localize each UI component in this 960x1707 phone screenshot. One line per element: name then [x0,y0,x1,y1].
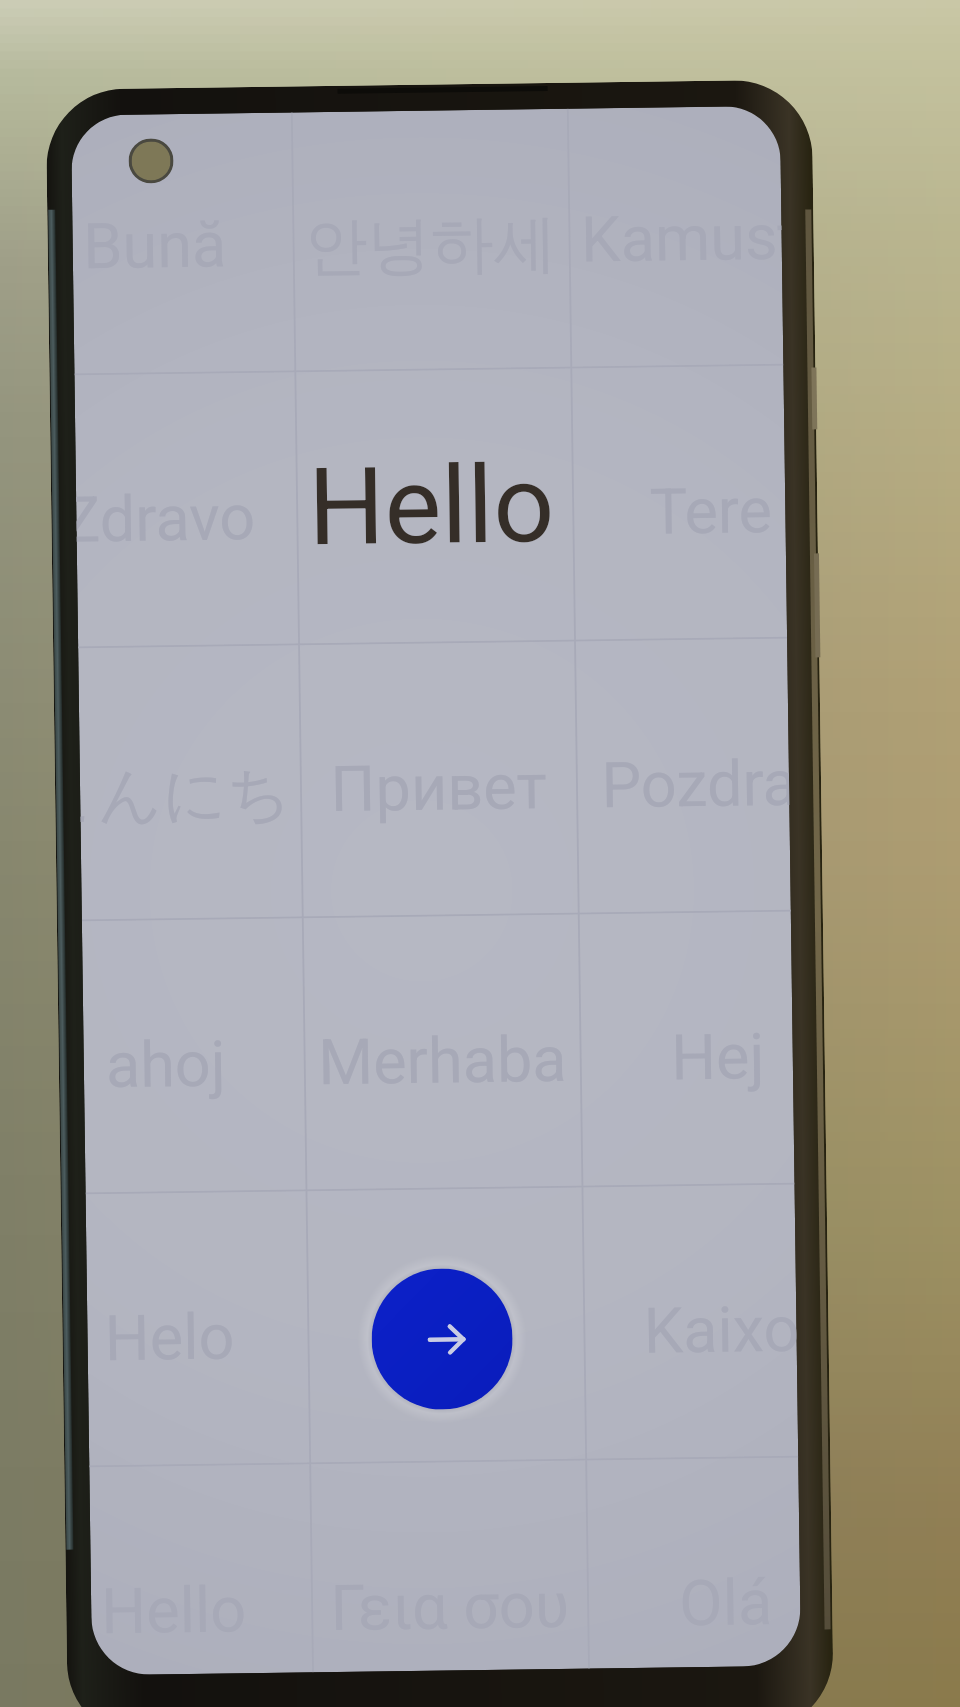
button[interactable]: Next [371,1268,514,1410]
staticText: Hej [670,1020,765,1095]
staticText: Hola [380,1297,512,1372]
staticText: Pozdrav [601,747,790,823]
staticText: ahoj [105,1027,226,1103]
staticText: Helo [104,1300,235,1376]
staticText: Tere [649,474,773,550]
staticText: Hello [307,442,556,570]
staticText: こんにちは [80,753,301,835]
staticText: Merhaba [317,1023,567,1100]
staticText: Zdravo [76,481,256,557]
staticText: Kaixo [643,1293,797,1369]
staticText: Kamusta [580,201,782,277]
staticText: Привет [330,750,548,827]
staticText: Bună [82,208,227,284]
staticText: 안녕하세요 [292,204,569,286]
